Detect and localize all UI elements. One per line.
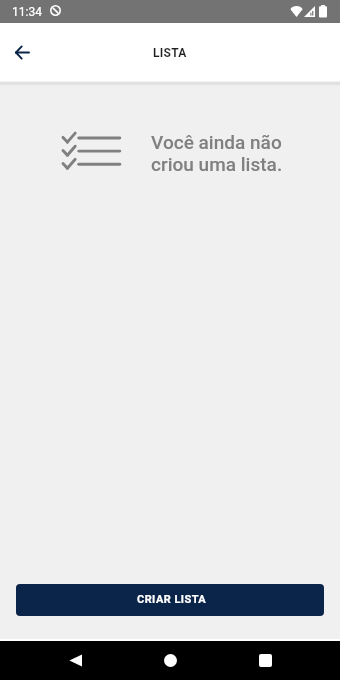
button[interactable]: Back [2, 32, 42, 72]
staticText: Você ainda não criou uma lista. [151, 131, 283, 176]
button[interactable]: Home [150, 641, 190, 680]
button[interactable]: Recents [245, 641, 285, 680]
staticText: CRIAR LISTA [137, 593, 207, 606]
staticText: LISTA [153, 46, 187, 60]
staticText: 11:34 [12, 5, 42, 19]
button[interactable]: Back [55, 641, 95, 680]
button[interactable]: CRIAR LISTA [16, 584, 324, 616]
